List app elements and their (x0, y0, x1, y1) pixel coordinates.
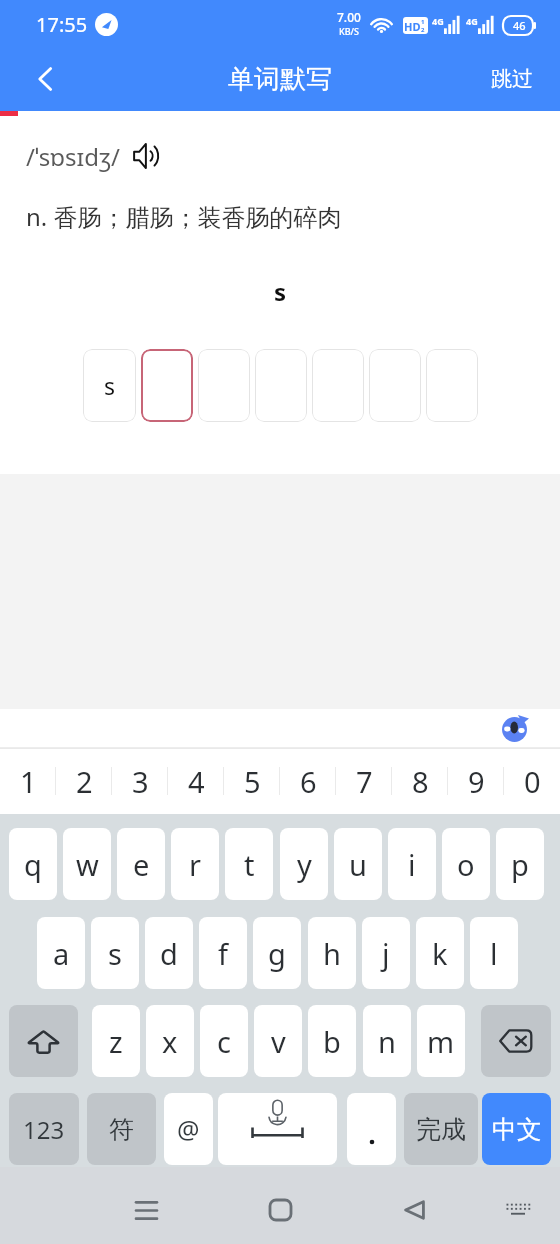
staticText: s (108, 934, 122, 973)
button[interactable]: Space (218, 1093, 337, 1165)
staticText: h (323, 934, 341, 973)
staticText: n (378, 1022, 396, 1061)
staticText: a (53, 934, 70, 973)
button[interactable]: z (92, 1005, 140, 1077)
button[interactable] (198, 349, 250, 422)
button[interactable]: x (146, 1005, 194, 1077)
button[interactable]: Play pronunciation (130, 139, 164, 173)
button[interactable]: q (9, 828, 57, 900)
button[interactable]: w (63, 828, 111, 900)
staticText: 6 (300, 762, 317, 801)
button[interactable]: 符 (87, 1093, 156, 1165)
button[interactable] (141, 349, 193, 422)
button[interactable] (426, 349, 478, 422)
staticText: z (109, 1022, 123, 1061)
button[interactable]: 中文 (482, 1093, 551, 1165)
staticText: t (244, 845, 255, 884)
staticText: 17:55 (36, 11, 88, 38)
button[interactable]: n (363, 1005, 411, 1077)
button[interactable]: 跳过 (491, 47, 533, 111)
staticText: l (490, 934, 498, 973)
staticText: 单词默写 (228, 63, 332, 96)
button[interactable]: l (470, 917, 518, 989)
button[interactable] (312, 349, 364, 422)
button[interactable]: a (37, 917, 85, 989)
staticText: KB/S (339, 25, 359, 37)
button[interactable]: 完成 (404, 1093, 478, 1165)
button[interactable]: Recent apps (123, 1187, 169, 1233)
button[interactable]: h (308, 917, 356, 989)
button[interactable]: 4 (168, 748, 224, 814)
button[interactable]: Back (391, 1187, 437, 1233)
button[interactable]: k (416, 917, 464, 989)
button[interactable]: 8 (392, 748, 448, 814)
staticText: @ (177, 1112, 200, 1146)
button[interactable]: u (334, 828, 382, 900)
staticText: q (24, 845, 42, 884)
button[interactable]: Switch input method (498, 713, 530, 745)
button[interactable]: m (417, 1005, 465, 1077)
button[interactable]: Backspace (481, 1005, 551, 1077)
button[interactable]: e (117, 828, 165, 900)
staticText: b (323, 1022, 341, 1061)
button[interactable]: b (308, 1005, 356, 1077)
staticText: 5 (244, 762, 261, 801)
button[interactable]: s (83, 349, 136, 422)
button[interactable] (255, 349, 307, 422)
staticText: f (218, 934, 228, 973)
button[interactable]: s (91, 917, 139, 989)
button[interactable]: Shift (9, 1005, 78, 1077)
button[interactable]: c (200, 1005, 248, 1077)
staticText: p (511, 845, 529, 884)
button[interactable]: y (280, 828, 328, 900)
staticText: k (432, 934, 448, 973)
button[interactable]: 5 (224, 748, 280, 814)
button[interactable]: 0 (504, 748, 560, 814)
button[interactable]: f (199, 917, 247, 989)
button[interactable]: g (253, 917, 301, 989)
button[interactable]: v (254, 1005, 302, 1077)
staticText: HD (404, 19, 421, 34)
staticText: 7.00 (337, 9, 361, 25)
button[interactable]: 9 (448, 748, 504, 814)
button[interactable] (347, 1093, 396, 1165)
button[interactable]: 6 (280, 748, 336, 814)
staticText: x (162, 1022, 178, 1061)
button[interactable]: Hide keyboard (495, 1187, 541, 1233)
staticText: w (76, 845, 99, 884)
button[interactable]: o (442, 828, 490, 900)
staticText: e (133, 845, 150, 884)
button[interactable]: Back (14, 47, 78, 111)
staticText: c (217, 1022, 231, 1061)
staticText: 4G (466, 15, 478, 27)
button[interactable]: j (362, 917, 410, 989)
staticText: 4 (188, 762, 205, 801)
staticText: m (427, 1022, 455, 1061)
button[interactable]: @ (164, 1093, 213, 1165)
staticText: 2 (76, 762, 93, 801)
button[interactable]: r (171, 828, 219, 900)
button[interactable]: Home (257, 1187, 303, 1233)
button[interactable]: d (145, 917, 193, 989)
button[interactable]: 2 (56, 748, 112, 814)
button[interactable]: i (388, 828, 436, 900)
staticText: 1 (20, 762, 37, 801)
staticText: 8 (412, 762, 429, 801)
button[interactable]: t (225, 828, 273, 900)
staticText: 7 (356, 762, 373, 801)
staticText: j (382, 934, 390, 973)
button[interactable]: 3 (112, 748, 168, 814)
staticText: 0 (524, 762, 541, 801)
button[interactable]: 7 (336, 748, 392, 814)
staticText: 46 (513, 18, 526, 33)
staticText: 1 (421, 18, 425, 26)
staticText: 4G (432, 15, 444, 27)
button[interactable]: 123 (9, 1093, 79, 1165)
staticText: v (271, 1022, 286, 1061)
button[interactable]: 1 (0, 748, 56, 814)
button[interactable] (369, 349, 421, 422)
staticText: g (268, 934, 286, 973)
staticText: n. 香肠；腊肠；装香肠的碎肉 (26, 200, 342, 233)
button[interactable]: p (496, 828, 544, 900)
staticText: 跳过 (491, 66, 533, 92)
